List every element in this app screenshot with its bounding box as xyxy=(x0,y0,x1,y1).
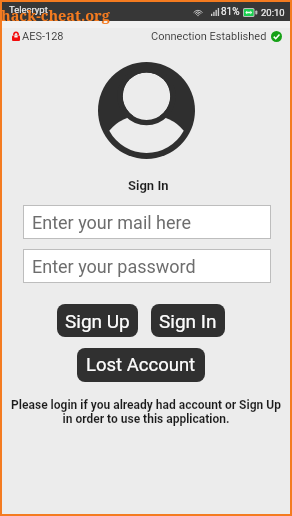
staticText: Lost Account xyxy=(86,354,196,376)
staticText: Please login if you already had account … xyxy=(11,398,281,426)
button[interactable]: Lost Account xyxy=(77,348,205,382)
other: Wi-Fi xyxy=(193,7,203,17)
staticText: Connection Established xyxy=(151,30,267,43)
button[interactable]: Sign Up xyxy=(57,304,138,337)
staticText: hack-cheat.org xyxy=(1,5,110,25)
staticText: Telecrypt xyxy=(9,4,48,15)
other: Encrypted xyxy=(12,32,20,41)
staticText: AES-128 xyxy=(22,30,64,43)
staticText: Sign In xyxy=(159,310,217,332)
other: Profile picture xyxy=(98,62,195,159)
staticText: Enter your password xyxy=(32,256,196,277)
staticText: 20:10 xyxy=(261,7,285,18)
staticText: Sign In xyxy=(128,178,169,193)
button[interactable]: Enter your password xyxy=(23,249,271,283)
button[interactable]: Enter your mail here xyxy=(23,205,271,239)
staticText: Enter your mail here xyxy=(32,212,192,233)
staticText: 81% xyxy=(221,6,240,18)
staticText: Sign Up xyxy=(65,310,130,332)
button[interactable]: Sign In xyxy=(151,304,225,337)
